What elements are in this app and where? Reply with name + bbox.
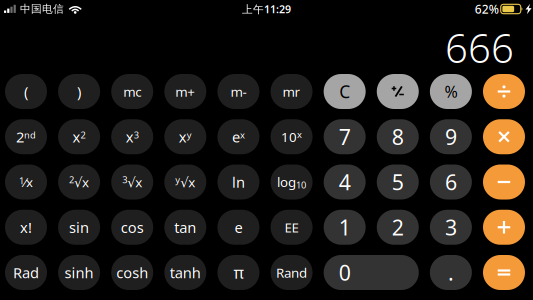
button[interactable]: x3	[111, 119, 153, 154]
button[interactable]: EE	[271, 210, 313, 245]
button[interactable]: log10	[271, 164, 313, 199]
staticText: 上午11:29	[242, 2, 291, 16]
staticText: sinh	[65, 263, 94, 282]
staticText: x2	[73, 127, 86, 146]
staticText: x3	[126, 127, 139, 146]
staticText: m-	[230, 83, 246, 100]
button[interactable]: Divide	[483, 74, 525, 109]
button[interactable]: 2nd	[5, 119, 47, 154]
staticText: 1⁄x	[19, 173, 33, 191]
button[interactable]: tan	[164, 210, 206, 245]
staticText: mr	[283, 83, 301, 100]
button[interactable]: 3√x	[111, 164, 153, 199]
button[interactable]: Minus	[483, 164, 525, 199]
button[interactable]: cosh	[111, 255, 153, 290]
button[interactable]: 3	[430, 210, 472, 245]
button[interactable]: Plus	[483, 210, 525, 245]
staticText: y√x	[175, 173, 195, 191]
button[interactable]: ln	[217, 164, 259, 199]
staticText: 2√x	[69, 173, 89, 191]
staticText: tan	[174, 217, 196, 237]
button[interactable]: Rand	[271, 255, 313, 290]
button[interactable]: e	[217, 210, 259, 245]
button[interactable]: x!	[5, 210, 47, 245]
button[interactable]: cos	[111, 210, 153, 245]
staticText: 3	[445, 213, 457, 241]
staticText: 666	[445, 21, 514, 74]
staticText: log10	[277, 173, 306, 191]
staticText: C	[339, 80, 350, 103]
staticText: 中国电信	[20, 2, 64, 15]
button[interactable]: 1	[324, 210, 366, 245]
button[interactable]: 2	[377, 210, 419, 245]
button[interactable]: 5	[377, 164, 419, 199]
staticText: 62%	[475, 1, 499, 17]
button[interactable]: Equals	[483, 255, 525, 290]
staticText: xy	[179, 127, 192, 146]
staticText: mc	[123, 83, 141, 100]
staticText: ex	[232, 127, 245, 146]
button[interactable]: x2	[58, 119, 100, 154]
button[interactable]: ex	[217, 119, 259, 154]
button[interactable]: 8	[377, 119, 419, 154]
staticText: m+	[175, 83, 195, 100]
staticText: 4	[339, 168, 351, 196]
button[interactable]: 9	[430, 119, 472, 154]
staticText: π	[233, 262, 243, 283]
button[interactable]: .	[430, 255, 472, 290]
button[interactable]: )	[58, 74, 100, 109]
button[interactable]: sinh	[58, 255, 100, 290]
staticText: (	[24, 82, 28, 101]
button[interactable]: tanh	[164, 255, 206, 290]
button[interactable]: y√x	[164, 164, 206, 199]
staticText: 1	[339, 213, 351, 241]
staticText: 8	[392, 123, 404, 151]
staticText: 5	[392, 168, 404, 196]
button[interactable]: 2√x	[58, 164, 100, 199]
staticText: tanh	[170, 263, 201, 282]
button[interactable]: Multiply	[483, 119, 525, 154]
staticText: 2nd	[16, 127, 36, 146]
staticText: ln	[232, 172, 245, 192]
staticText: 6	[445, 168, 457, 196]
button[interactable]: m-	[217, 74, 259, 109]
staticText: %	[444, 81, 457, 102]
button[interactable]: xy	[164, 119, 206, 154]
button[interactable]: m+	[164, 74, 206, 109]
staticText: x!	[20, 217, 32, 237]
button[interactable]: Plus Minus	[377, 74, 419, 109]
button[interactable]: sin	[58, 210, 100, 245]
button[interactable]: 0	[324, 255, 419, 290]
staticText: Rand	[276, 264, 307, 281]
staticText: 2	[392, 213, 404, 241]
button[interactable]: mc	[111, 74, 153, 109]
staticText: EE	[285, 218, 299, 236]
button[interactable]: π	[217, 255, 259, 290]
button[interactable]: 1⁄x	[5, 164, 47, 199]
button[interactable]: 7	[324, 119, 366, 154]
staticText: cos	[121, 217, 144, 237]
button[interactable]: C	[324, 74, 366, 109]
staticText: 0	[339, 258, 351, 287]
staticText: .	[448, 258, 454, 287]
staticText: 10x	[281, 128, 302, 146]
staticText: e	[234, 217, 242, 237]
button[interactable]: 6	[430, 164, 472, 199]
staticText: Rad	[13, 263, 39, 282]
staticText: cosh	[116, 263, 148, 282]
staticText: 3√x	[122, 173, 142, 191]
button[interactable]: 4	[324, 164, 366, 199]
staticText: )	[77, 82, 81, 101]
button[interactable]: Rad	[5, 255, 47, 290]
button[interactable]: 10x	[271, 119, 313, 154]
button[interactable]: (	[5, 74, 47, 109]
staticText: 7	[339, 123, 351, 151]
button[interactable]: mr	[271, 74, 313, 109]
staticText: sin	[69, 217, 89, 237]
button[interactable]: %	[430, 74, 472, 109]
staticText: 9	[445, 123, 457, 151]
